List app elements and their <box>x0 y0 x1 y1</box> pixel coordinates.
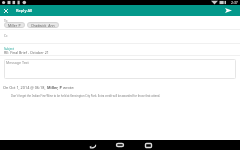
button[interactable]: Send <box>223 5 234 16</box>
staticText: 2:37 <box>231 0 238 5</box>
button[interactable]: Message Text <box>4 59 236 79</box>
staticText: Don't forget the Indian Fine Wine to be … <box>11 94 161 98</box>
staticText: Subject <box>4 47 14 51</box>
staticText: wrote: <box>62 85 75 90</box>
staticText: Miller, P <box>47 85 62 90</box>
button[interactable]: Chadwick, Ann <box>27 22 59 28</box>
staticText: Message Text <box>6 60 29 65</box>
staticText: Cc <box>4 34 8 38</box>
staticText: Chadwick, Ann <box>31 23 55 28</box>
staticText: Miller, P <box>8 23 21 28</box>
staticText: To <box>4 19 8 23</box>
staticText: Reply All <box>16 8 33 13</box>
button[interactable]: Back <box>84 140 100 150</box>
staticText: On Oct 1, 2014 @ 06:18, <box>3 85 47 90</box>
button[interactable]: Miller, P <box>4 22 25 28</box>
button[interactable]: Recents <box>140 140 156 150</box>
button[interactable]: Close <box>0 5 11 16</box>
button[interactable]: Home <box>112 140 128 150</box>
staticText: RE: Final Brief - October 21 <box>4 50 49 55</box>
